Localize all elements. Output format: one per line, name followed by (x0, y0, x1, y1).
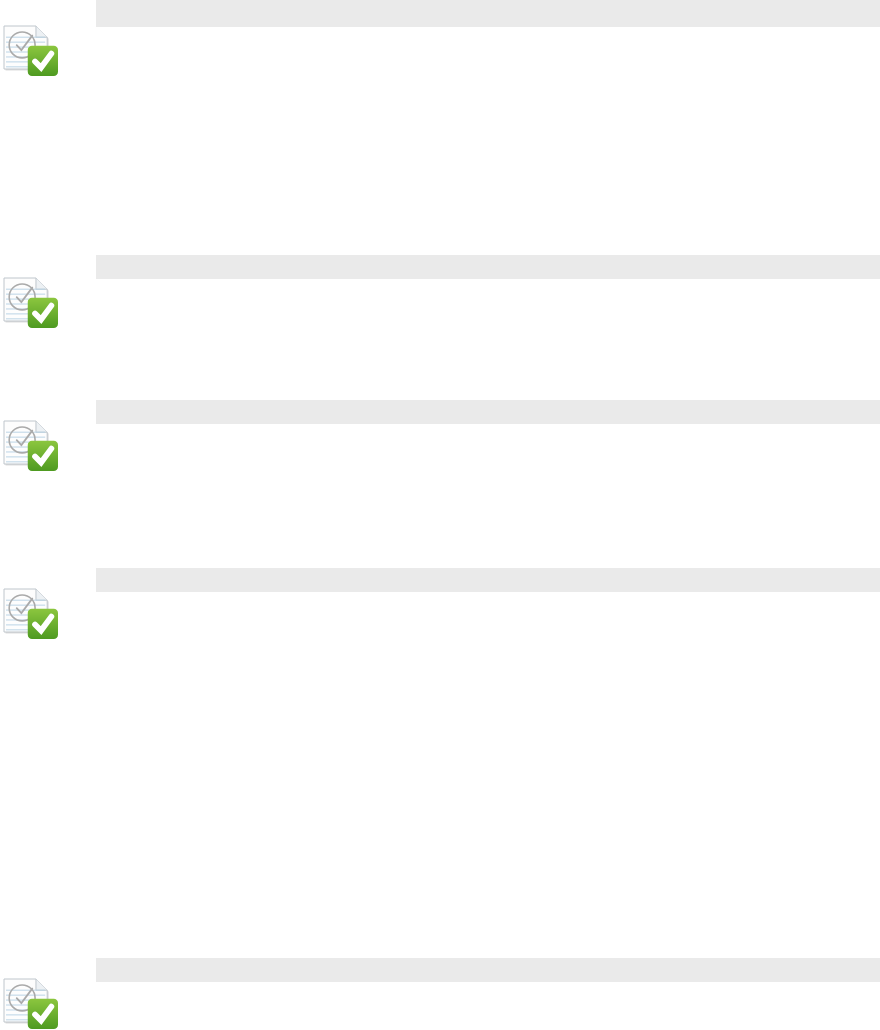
button[interactable]: Document checked (4, 278, 58, 328)
button[interactable]: Document checked (4, 26, 58, 76)
button[interactable]: Document checked (4, 979, 58, 1029)
button[interactable]: Document checked (4, 589, 58, 639)
button[interactable]: Document checked (4, 421, 58, 471)
